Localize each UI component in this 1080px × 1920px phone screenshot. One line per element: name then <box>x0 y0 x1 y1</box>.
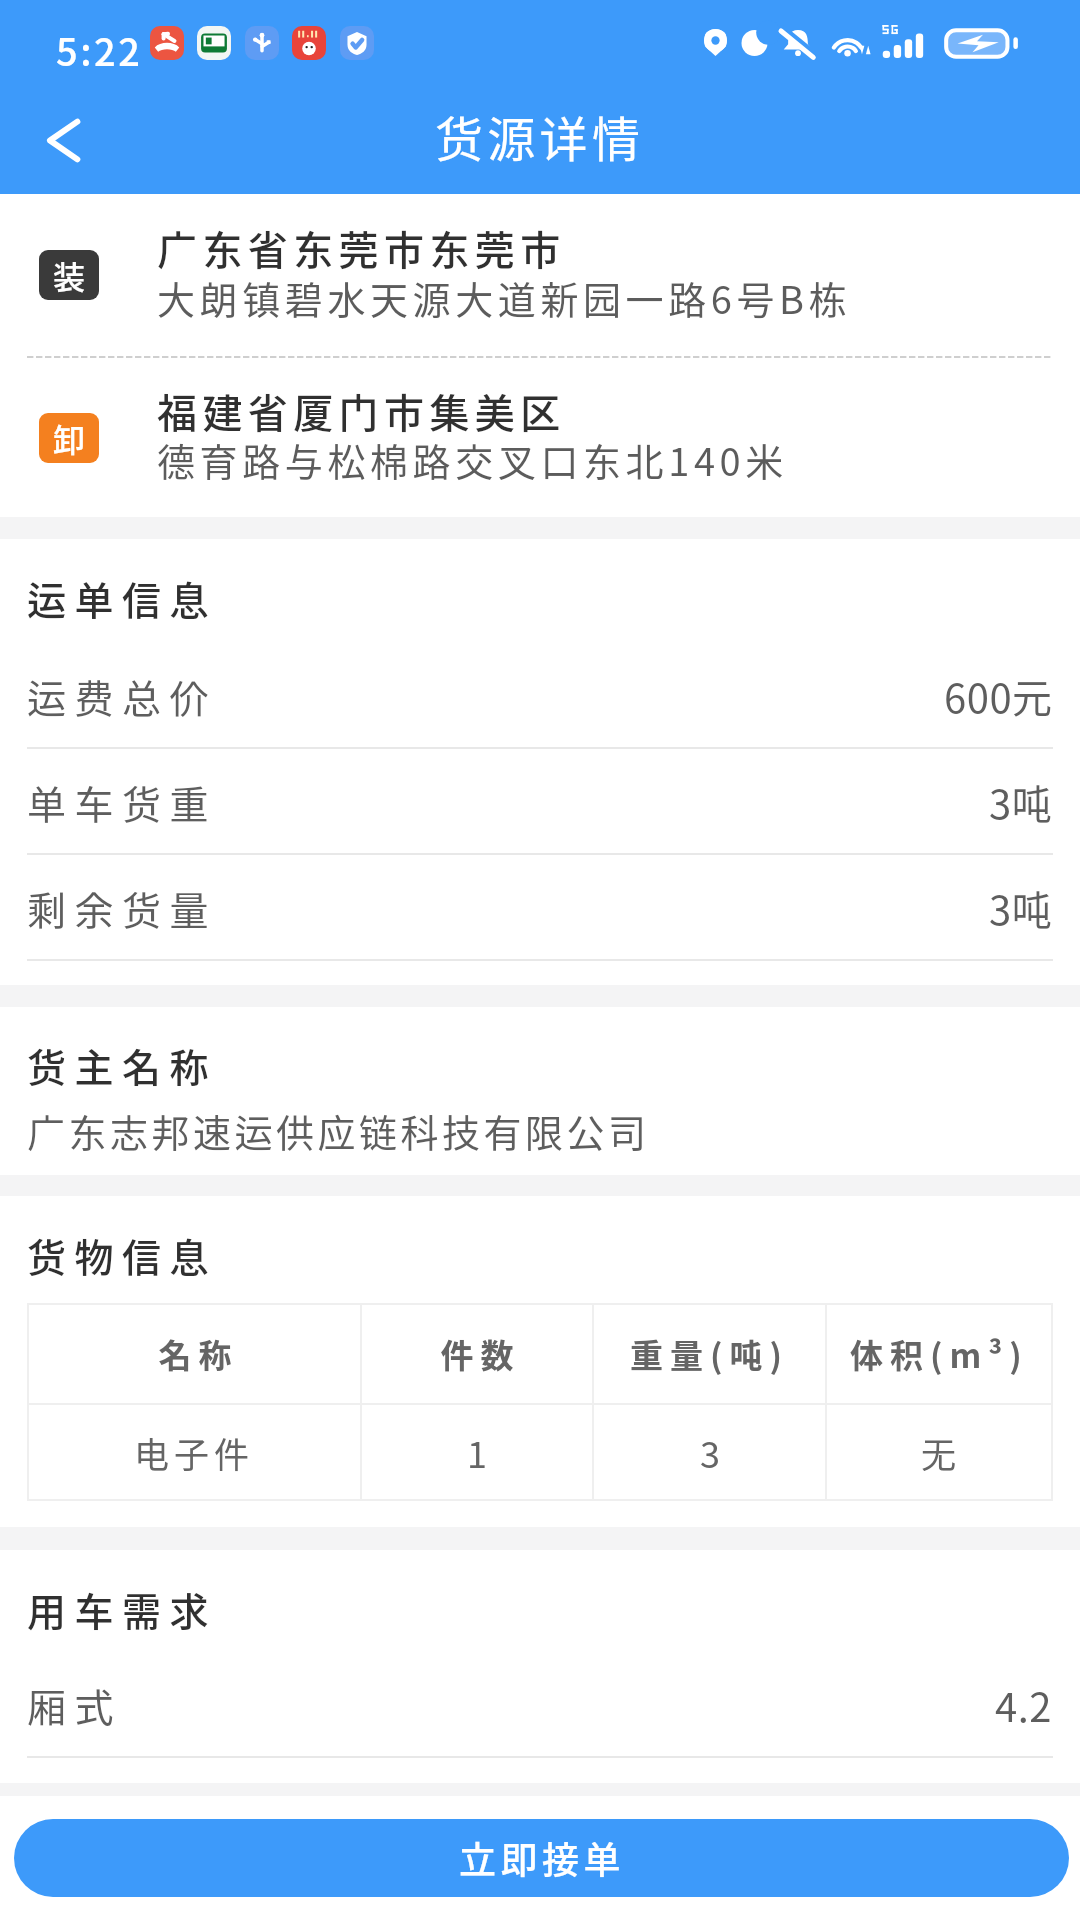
staticText: 单车货重 <box>27 774 218 830</box>
staticText: 件数 <box>437 1330 517 1378</box>
staticText: 大朗镇碧水天源大道新园一路6号B栋 <box>157 270 852 325</box>
button[interactable]: 装 <box>0 194 1080 356</box>
staticText: 货源详情 <box>435 101 645 171</box>
staticText: 货主名称 <box>27 1037 218 1093</box>
staticText: 剩余货量 <box>27 880 218 936</box>
staticText: 1 <box>467 1426 487 1478</box>
button[interactable]: 运费总价 <box>0 643 1080 749</box>
staticText: 600元 <box>944 667 1053 725</box>
staticText: 体积(m³) <box>850 1330 1029 1378</box>
button[interactable]: 剩余货量 <box>0 855 1080 961</box>
staticText: 卸 <box>53 415 86 461</box>
staticText: 5:22 <box>56 22 143 77</box>
staticText: 福建省厦门市集美区 <box>157 382 566 440</box>
staticText: 厢式 <box>27 1677 123 1733</box>
button[interactable]: 厢式 <box>0 1652 1080 1758</box>
staticText: 运单信息 <box>27 570 218 626</box>
staticText: 装 <box>53 252 86 298</box>
staticText: 用车需求 <box>27 1581 218 1637</box>
button[interactable]: 卸 <box>0 358 1080 517</box>
staticText: 德育路与松棉路交叉口东北140米 <box>157 432 788 487</box>
staticText: 无 <box>921 1427 957 1478</box>
staticText: 立即接单 <box>459 1831 625 1885</box>
staticText: 广东省东莞市东莞市 <box>157 219 566 277</box>
staticText: 名称 <box>155 1330 235 1378</box>
staticText: 货物信息 <box>27 1227 218 1283</box>
staticText: 运费总价 <box>27 668 218 724</box>
staticText: 广东志邦速运供应链科技有限公司 <box>27 1103 650 1158</box>
staticText: 4.2 <box>995 1676 1053 1734</box>
button[interactable]: 单车货重 <box>0 749 1080 855</box>
staticText: 电子件 <box>134 1427 255 1478</box>
staticText: 3 <box>700 1426 720 1478</box>
staticText: 3吨 <box>989 879 1053 937</box>
button[interactable]: Back <box>14 97 114 189</box>
button[interactable]: 立即接单 <box>14 1819 1069 1897</box>
staticText: 3吨 <box>989 773 1053 831</box>
staticText: 重量(吨) <box>630 1330 789 1378</box>
